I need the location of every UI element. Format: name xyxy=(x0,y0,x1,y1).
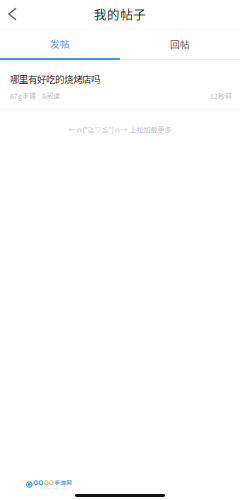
staticText: 发帖 xyxy=(50,36,70,51)
button[interactable]: 返回 xyxy=(0,0,25,28)
staticText: GO xyxy=(33,479,43,487)
button[interactable]: 发帖 xyxy=(0,29,120,60)
button[interactable]: 回帖 xyxy=(120,29,240,60)
staticText: 12秒前 xyxy=(210,91,232,101)
staticText: 6060shouyou.com xyxy=(39,487,66,490)
staticText: 我的帖子 xyxy=(94,5,146,23)
staticText: 手游网 xyxy=(54,479,72,487)
button[interactable]: 哪里有好吃的烧烤店吗 xyxy=(0,60,240,109)
staticText: GO xyxy=(44,479,54,487)
staticText: 87g手哥 8阅读 xyxy=(10,91,60,101)
staticText: ←ｎ(*≧▽≦*)ｎ→ 上拉加载更多 xyxy=(68,124,171,135)
staticText: 哪里有好吃的烧烤店吗 xyxy=(10,72,100,86)
staticText: 回帖 xyxy=(170,37,190,51)
